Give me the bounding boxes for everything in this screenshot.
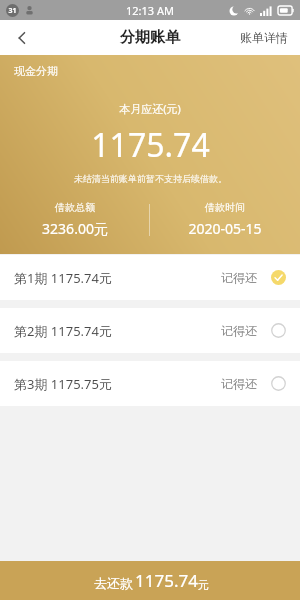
staticText: 现金分期 <box>14 64 58 78</box>
staticText: 第1期 1175.74元 <box>14 269 112 287</box>
staticText: 本月应还(元) <box>119 101 181 116</box>
staticText: 12:13 AM <box>126 3 174 18</box>
staticText: 分期账单 <box>120 28 180 47</box>
staticText: 1175.74 <box>135 569 198 592</box>
button[interactable]: Back <box>0 20 44 55</box>
staticText: 去还款 <box>92 574 135 592</box>
button[interactable]: 去还款 <box>0 561 300 600</box>
staticText: 3236.00元 <box>42 219 108 238</box>
staticText: 第3期 1175.75元 <box>14 375 112 393</box>
button[interactable]: 账单详情 <box>228 20 300 55</box>
staticText: 借款总额 <box>55 201 95 214</box>
button[interactable]: 第2期 1175.74元 <box>0 308 300 353</box>
staticText: 1175.74 <box>91 123 210 167</box>
button[interactable]: 第3期 1175.75元 <box>0 361 300 406</box>
staticText: 账单详情 <box>240 30 288 45</box>
staticText: 元 <box>198 578 209 592</box>
button[interactable]: 第1期 1175.74元 <box>0 255 300 300</box>
staticText: 2020-05-15 <box>188 219 262 238</box>
staticText: 记得还 <box>221 270 257 285</box>
staticText: 31 <box>8 6 17 16</box>
staticText: 未结清当前账单前暂不支持后续借款。 <box>74 173 227 184</box>
staticText: 第2期 1175.74元 <box>14 322 112 340</box>
staticText: 记得还 <box>221 376 257 391</box>
staticText: 记得还 <box>221 323 257 338</box>
staticText: 借款时间 <box>205 201 245 214</box>
